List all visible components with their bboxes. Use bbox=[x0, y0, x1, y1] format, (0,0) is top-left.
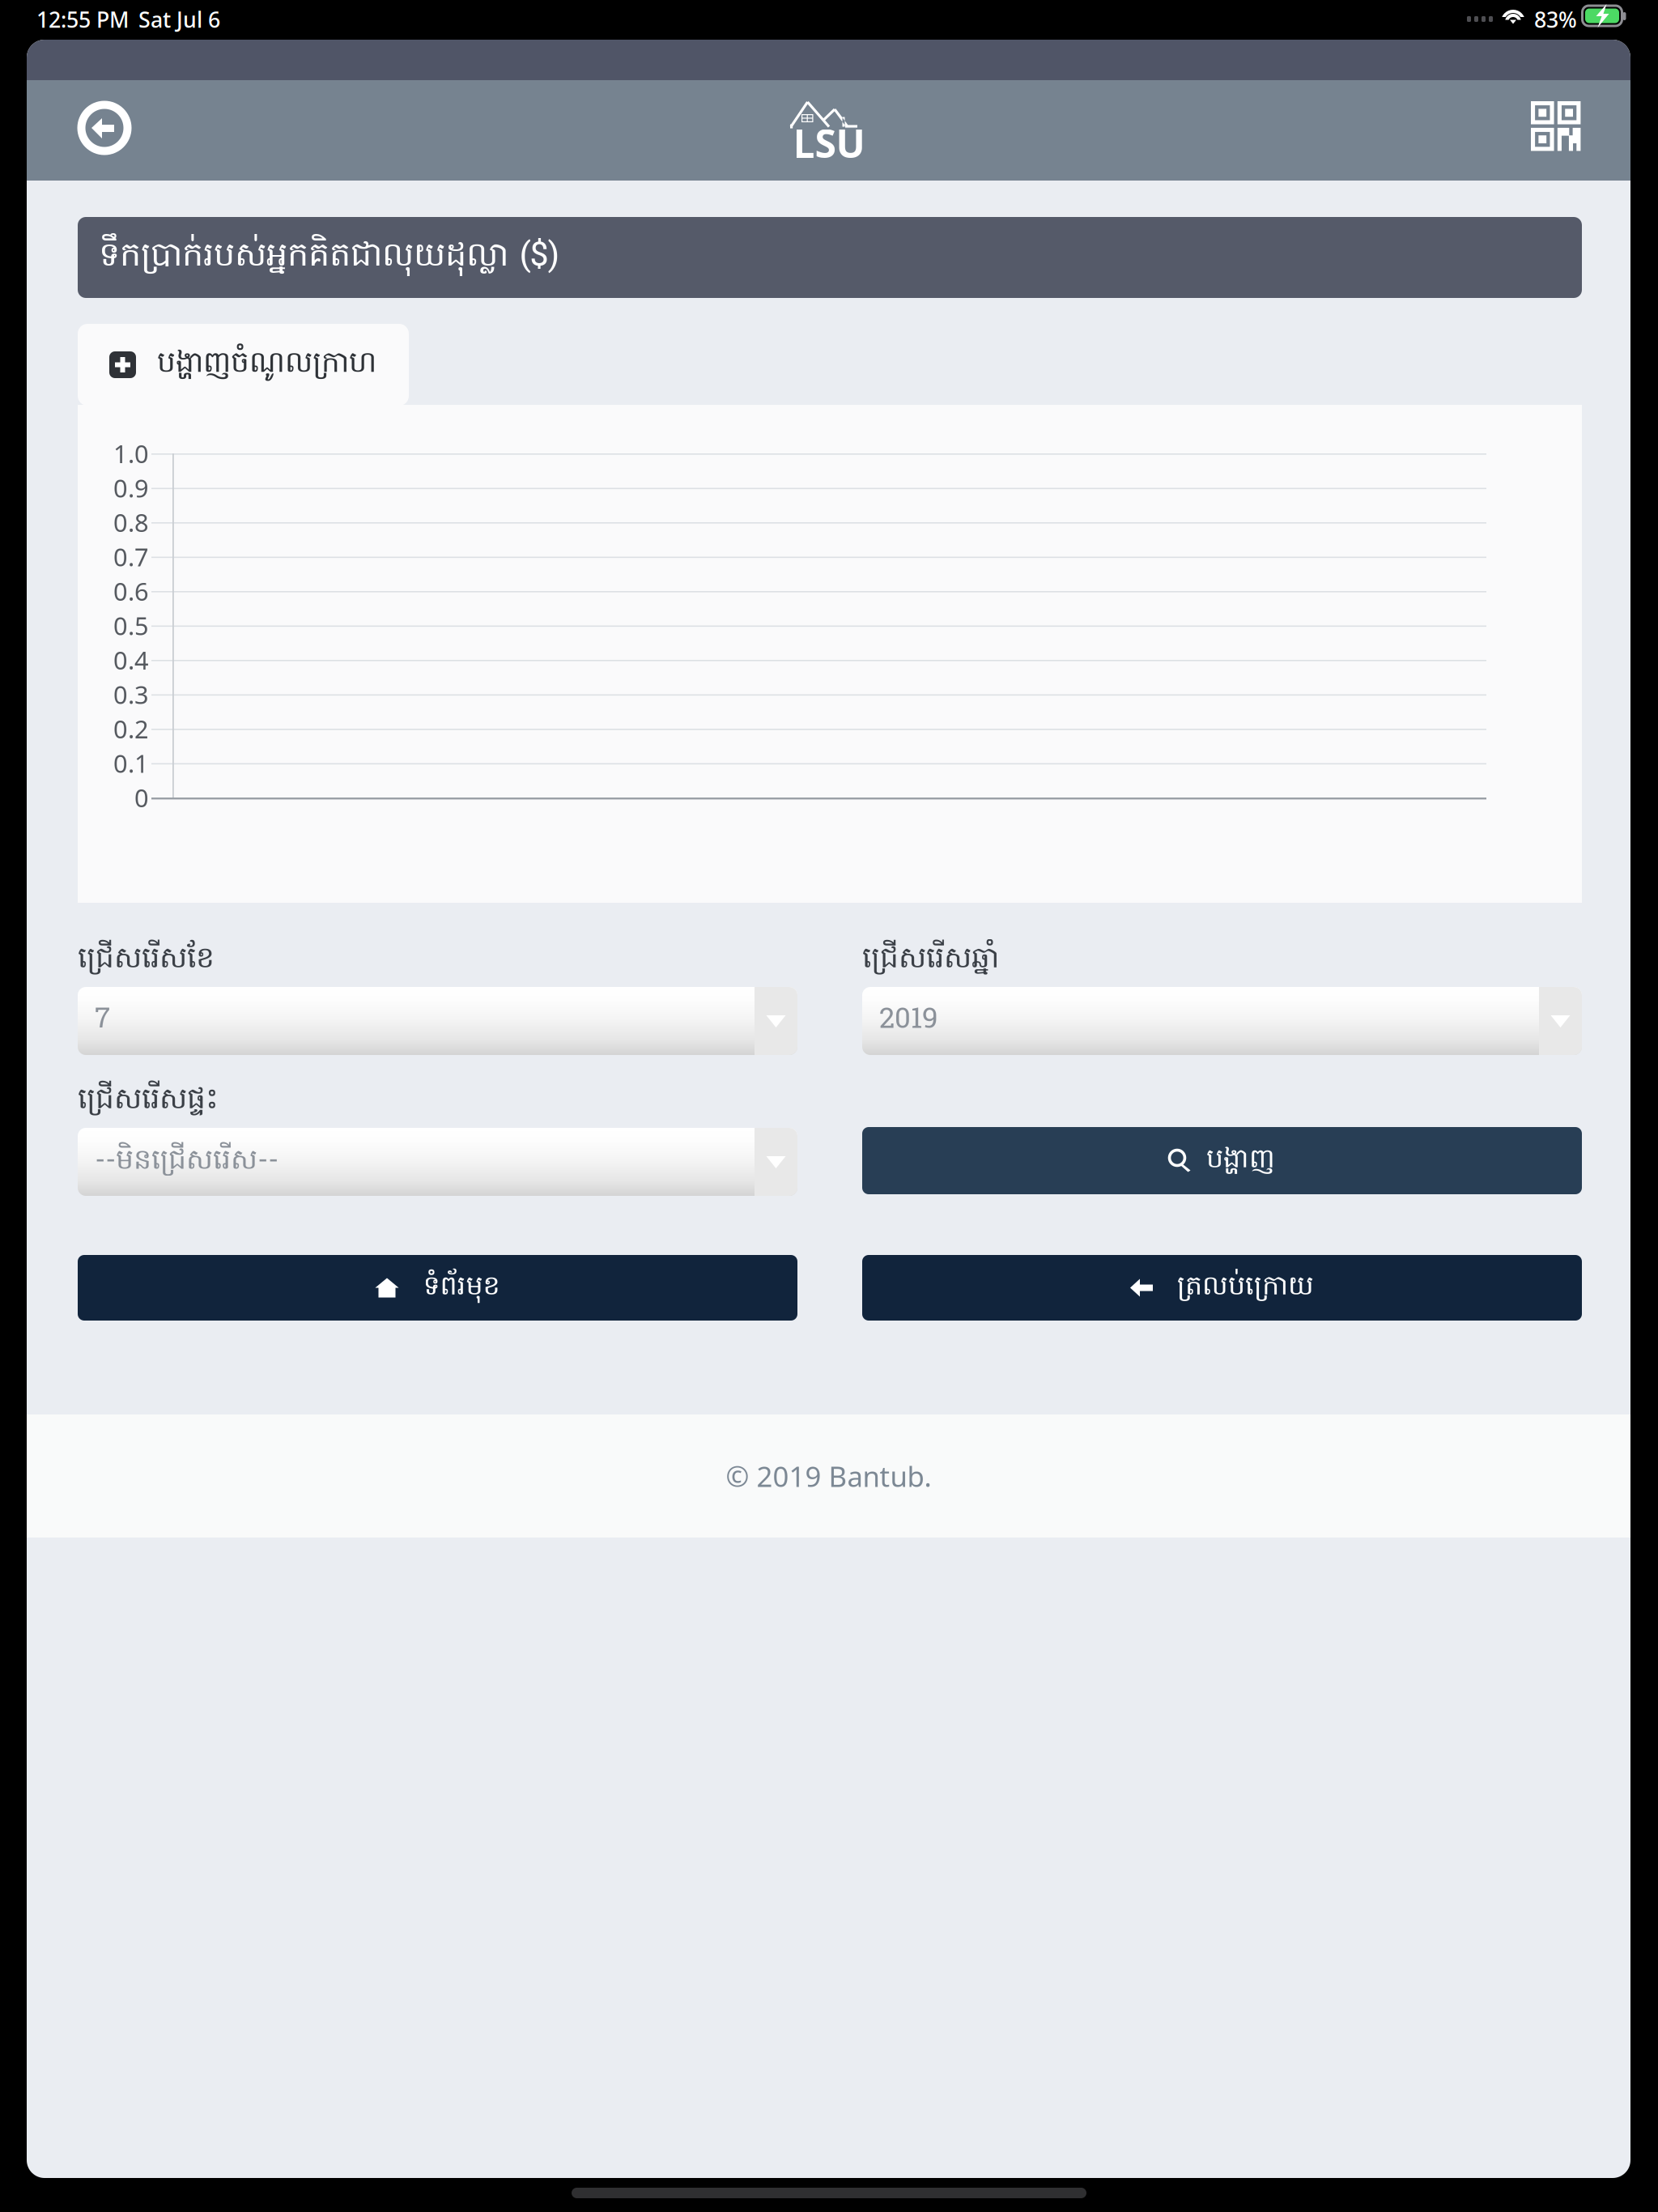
button[interactable]: បង្ហាញចំណូលក្រាហ bbox=[78, 324, 409, 406]
staticText: 0.4 bbox=[113, 643, 149, 676]
staticText: 0.7 bbox=[113, 540, 149, 573]
staticText: 2019 bbox=[879, 1000, 938, 1042]
staticText: 0.3 bbox=[113, 678, 149, 711]
staticText: --មិនជ្រើសរើស-- bbox=[95, 1141, 278, 1182]
staticText: 0.1 bbox=[113, 747, 149, 780]
button[interactable]: Back bbox=[64, 87, 145, 168]
button[interactable]: 7 bbox=[78, 987, 797, 1055]
staticText: បង្ហាញចំណូលក្រាហ bbox=[157, 343, 376, 386]
staticText: 0.5 bbox=[113, 609, 149, 642]
button[interactable]: បង្ហាញ bbox=[862, 1127, 1582, 1194]
button[interactable]: 2019 bbox=[862, 987, 1582, 1055]
button[interactable]: ត្រលប់ក្រោយ bbox=[862, 1255, 1582, 1321]
button[interactable]: Scan QR code bbox=[1518, 88, 1593, 164]
button[interactable]: --មិនជ្រើសរើស-- bbox=[78, 1128, 797, 1196]
staticText: Sat Jul 6 bbox=[138, 5, 220, 34]
staticText: 0 bbox=[134, 781, 149, 814]
staticText: ជ្រើសរើសឆ្នាំ bbox=[862, 939, 999, 982]
staticText: 12:55 PM bbox=[36, 5, 129, 34]
staticText: 0.8 bbox=[113, 506, 149, 539]
staticText: 0.6 bbox=[113, 575, 149, 607]
staticText: 0.9 bbox=[113, 471, 149, 504]
staticText: បង្ហាញ bbox=[1206, 1141, 1275, 1180]
staticText: 7 bbox=[95, 1000, 110, 1042]
staticText: ជ្រើសរើសផ្ទះ bbox=[78, 1080, 219, 1122]
button[interactable]: ទំព័រមុខ bbox=[78, 1255, 797, 1321]
staticText: 1.0 bbox=[113, 437, 149, 470]
staticText: 83% bbox=[1534, 5, 1577, 34]
staticText: ទឹកប្រាក់របស់អ្នកគិតជាលុយដុល្លា ($) bbox=[99, 233, 559, 282]
staticText: ជ្រើសរើសខែ bbox=[78, 939, 215, 982]
staticText: 0.2 bbox=[113, 712, 149, 745]
staticText: ត្រលប់ក្រោយ bbox=[1177, 1268, 1314, 1308]
staticText: LSU bbox=[793, 117, 865, 169]
staticText: ទំព័រមុខ bbox=[423, 1268, 500, 1308]
staticText: © 2019 Bantub. bbox=[726, 1457, 931, 1495]
